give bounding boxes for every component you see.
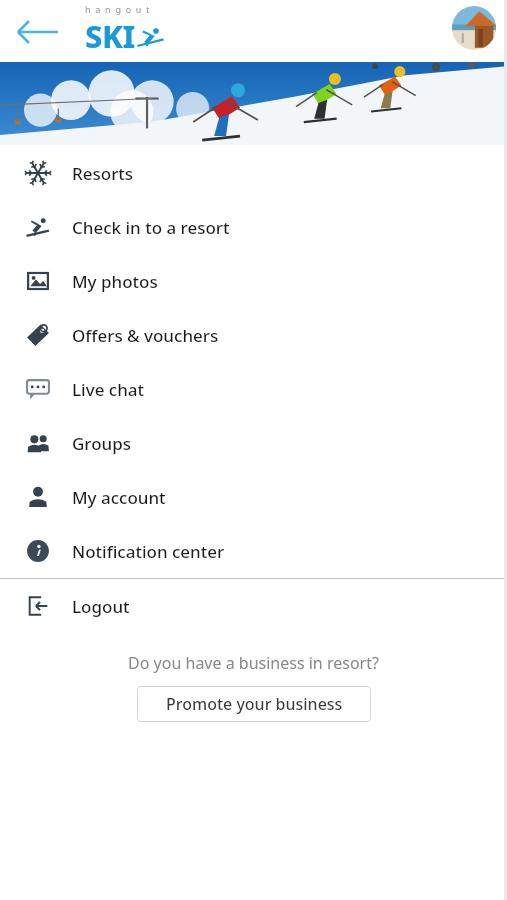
staticText: Promote your business [166,693,343,715]
staticText: Live chat [72,378,145,401]
button[interactable]: My account [0,470,507,524]
staticText: My account [72,486,166,509]
staticText: Do you have a business in resort? [128,652,379,674]
button[interactable]: Back [16,10,60,54]
button[interactable]: Logout [0,579,507,633]
button[interactable]: Live chat [0,362,507,416]
button[interactable]: Groups [0,416,507,470]
button[interactable]: Resorts [0,146,507,200]
staticText: h a n g o u t [85,3,151,15]
button[interactable]: Check in to a resort [0,200,507,254]
staticText: Offers & vouchers [72,324,219,347]
staticText: Resorts [72,162,134,185]
staticText: Logout [72,595,130,618]
button[interactable]: Promote your business [137,686,371,722]
staticText: My photos [72,270,158,293]
button[interactable]: Notification center [0,524,507,578]
staticText: Notification center [72,540,225,563]
button[interactable]: Offers & vouchers [0,308,507,362]
staticText: SKI [85,15,135,57]
button[interactable]: My photos [0,254,507,308]
staticText: Groups [72,432,132,455]
button[interactable]: Profile [452,6,496,50]
staticText: Check in to a resort [72,216,230,239]
